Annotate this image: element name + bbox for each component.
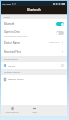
staticText: HC-05 bbox=[8, 64, 15, 67]
button[interactable]: Search Devices bbox=[1, 105, 23, 116]
button[interactable]: Open to Devi bbox=[1, 28, 67, 38]
button[interactable]: Bluetoth bbox=[1, 19, 67, 28]
staticText: Search Devices bbox=[5, 111, 19, 114]
staticText: realme X A8:5E:4 bbox=[8, 78, 24, 81]
staticText: HD 4:05 bbox=[2, 2, 11, 5]
button[interactable]: Device Name bbox=[1, 38, 67, 47]
staticText: Received Files bbox=[4, 50, 21, 54]
staticText: Only Bluetooth device can fi bbox=[4, 35, 28, 37]
button[interactable]: Received Files bbox=[1, 47, 67, 56]
button[interactable]: More bbox=[23, 105, 45, 116]
staticText: Switch bbox=[4, 16, 11, 19]
staticText: More bbox=[32, 111, 37, 114]
staticText: Paired Devices bbox=[4, 58, 18, 61]
staticText: Available Devices bbox=[4, 71, 21, 74]
staticText: OnePlus 6 bbox=[49, 41, 60, 44]
button[interactable]: realme X A8:5E:4 bbox=[1, 75, 67, 83]
staticText: Open to Devi bbox=[4, 30, 20, 34]
staticText: Bluetooth bbox=[27, 8, 41, 12]
other: Device settings bbox=[61, 64, 64, 67]
staticText: Bluetoth bbox=[4, 22, 15, 26]
staticText: Device Name bbox=[4, 41, 20, 45]
button[interactable]: HC-05 bbox=[1, 62, 67, 69]
